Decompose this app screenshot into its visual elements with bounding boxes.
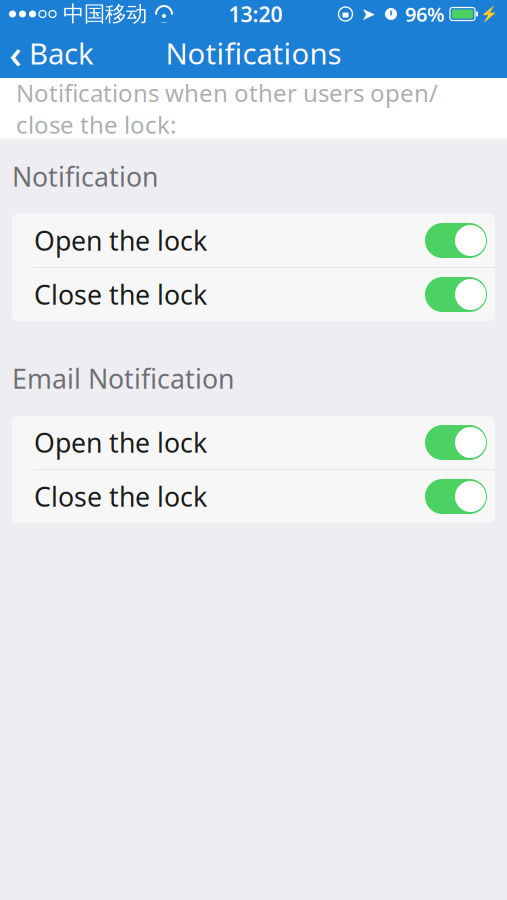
staticText: 13:20 [228,0,282,28]
staticText: ‹ [9,26,22,79]
button[interactable]: Open the lock [12,214,495,267]
button[interactable]: Close the lock [12,470,495,523]
staticText: Notifications when other users open/clos… [16,77,438,140]
button[interactable]: ‹ [0,28,103,78]
staticText: Open the lock [34,425,207,460]
staticText: Notifications [165,33,341,72]
staticText: ⚡ [480,6,498,22]
staticText: 96% [405,1,445,27]
staticText: ➤ [361,4,376,24]
staticText: Email Notification [12,361,234,396]
staticText: Close the lock [34,479,207,514]
staticText: Close the lock [34,277,207,312]
button[interactable]: Close the lock [12,268,495,321]
staticText: 中国移动 [63,1,147,27]
staticText: Notification [12,159,158,194]
button[interactable]: Open the lock [12,416,495,469]
staticText: Open the lock [34,223,207,258]
staticText: Back [29,33,94,72]
